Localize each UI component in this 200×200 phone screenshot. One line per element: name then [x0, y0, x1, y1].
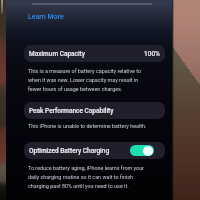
staticText: To reduce battery aging, iPhone learns f… — [28, 165, 144, 189]
staticText: Maximum Capacity — [29, 50, 85, 58]
button[interactable]: Optimized Battery Charging — [24, 142, 165, 159]
staticText: This is a measure of battery capacity re… — [28, 68, 141, 92]
button[interactable]: Optimized Battery Charging toggle — [130, 145, 154, 156]
staticText: Learn More — [28, 13, 64, 21]
button[interactable]: Peak Performance Capability — [24, 102, 165, 119]
staticText: This iPhone is unable to determine batte… — [28, 123, 147, 129]
staticText: 100% — [144, 50, 160, 58]
button[interactable]: Maximum Capacity — [24, 45, 165, 62]
staticText: Peak Performance Capability — [29, 107, 114, 115]
button[interactable]: Learn More — [26, 12, 66, 22]
staticText: Optimized Battery Charging — [29, 147, 110, 155]
